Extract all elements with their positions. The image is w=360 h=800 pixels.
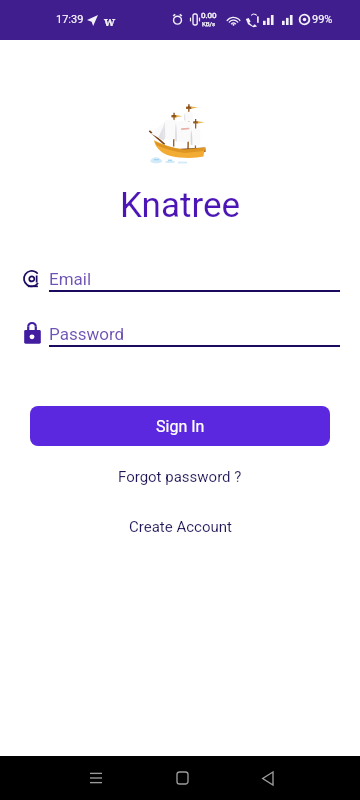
staticText: Create Account xyxy=(129,518,232,536)
button[interactable]: Create Account xyxy=(119,514,242,540)
button[interactable]: Back xyxy=(255,766,279,790)
button[interactable]: Home xyxy=(170,766,194,790)
staticText: Email xyxy=(49,269,92,289)
button[interactable]: Sign In xyxy=(30,406,330,446)
staticText: KB/s xyxy=(202,20,216,27)
button[interactable]: Email xyxy=(49,269,340,292)
button[interactable]: Password xyxy=(49,324,340,347)
staticText: w xyxy=(104,12,116,30)
button[interactable]: Forgot password ? xyxy=(108,464,252,490)
staticText: Forgot password ? xyxy=(118,468,242,486)
staticText: 99% xyxy=(312,13,333,26)
staticText: Sign In xyxy=(156,417,205,436)
staticText: Password xyxy=(49,324,125,344)
button[interactable]: Recent apps xyxy=(84,766,108,790)
staticText: Knatree xyxy=(120,185,241,226)
staticText: 0.00 xyxy=(201,11,217,20)
staticText: 17:39 xyxy=(56,13,84,26)
